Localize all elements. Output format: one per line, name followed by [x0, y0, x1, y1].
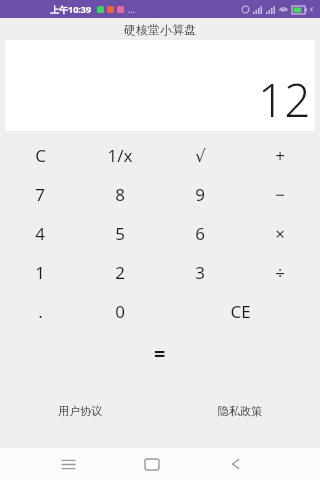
staticText: 1 — [35, 261, 45, 284]
button[interactable]: 1/x — [80, 136, 160, 175]
button[interactable]: 0 — [80, 292, 160, 331]
button[interactable]: 5 — [80, 214, 160, 253]
button[interactable]: Home — [132, 448, 172, 480]
button[interactable]: + — [240, 136, 320, 175]
button[interactable]: √ — [160, 136, 240, 175]
staticText: × — [275, 222, 285, 245]
button[interactable]: Menu — [48, 448, 88, 480]
staticText: ÷ — [275, 261, 285, 284]
staticText: 8 — [115, 183, 125, 206]
staticText: 隐私政策 — [218, 404, 262, 418]
staticText: − — [275, 183, 285, 206]
staticText: ⚡ — [309, 6, 314, 14]
staticText: 硬核堂小算盘 — [124, 22, 196, 37]
button[interactable]: 3 — [160, 253, 240, 292]
staticText: 7 — [35, 183, 45, 206]
button[interactable]: × — [240, 214, 320, 253]
button[interactable]: ÷ — [240, 253, 320, 292]
button[interactable]: Back — [216, 448, 256, 480]
staticText: 9 — [195, 183, 205, 206]
staticText: 3 — [195, 261, 205, 284]
staticText: 0 — [115, 300, 125, 323]
button[interactable]: 用户协议 — [54, 400, 106, 422]
button[interactable]: = — [130, 331, 190, 375]
staticText: 1/x — [107, 144, 133, 167]
staticText: 2 — [115, 261, 125, 284]
staticText: 6 — [195, 222, 205, 245]
button[interactable]: 8 — [80, 175, 160, 214]
staticText: √ — [195, 146, 206, 166]
button[interactable]: . — [0, 292, 80, 331]
staticText: = — [154, 340, 166, 367]
staticText: 上午10:39 — [50, 3, 92, 15]
staticText: … — [128, 3, 136, 15]
staticText: 用户协议 — [58, 404, 102, 418]
staticText: 5 — [115, 222, 125, 245]
button[interactable]: 4 — [0, 214, 80, 253]
button[interactable]: 2 — [80, 253, 160, 292]
staticText: 12 — [258, 68, 311, 131]
button[interactable]: − — [240, 175, 320, 214]
staticText: CE — [230, 300, 251, 323]
staticText: C — [35, 144, 46, 167]
staticText: + — [275, 144, 285, 167]
button[interactable]: 9 — [160, 175, 240, 214]
button[interactable]: C — [0, 136, 80, 175]
button[interactable]: CE — [160, 292, 320, 331]
staticText: 4 — [35, 222, 45, 245]
button[interactable]: 7 — [0, 175, 80, 214]
staticText: . — [38, 300, 43, 323]
button[interactable]: 隐私政策 — [214, 400, 266, 422]
button[interactable]: 6 — [160, 214, 240, 253]
button[interactable]: 1 — [0, 253, 80, 292]
